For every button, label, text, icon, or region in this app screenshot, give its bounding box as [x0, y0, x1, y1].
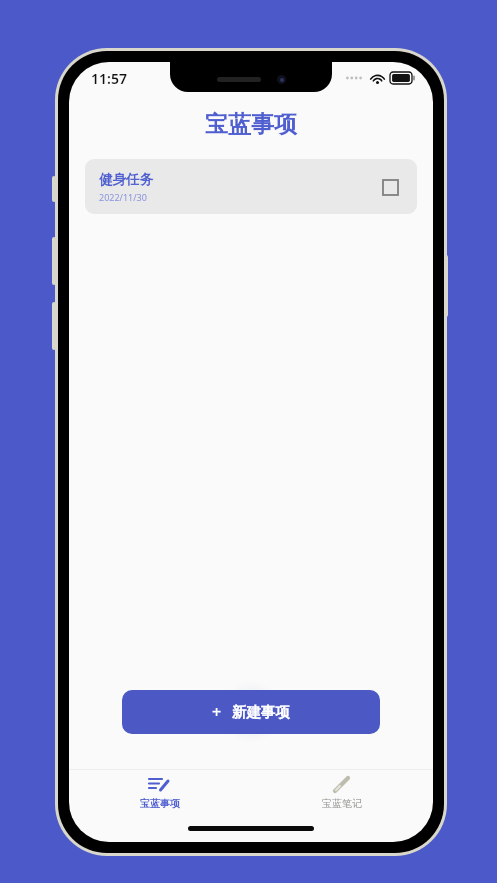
button[interactable]: 宝蓝笔记 — [251, 770, 433, 818]
button[interactable]: 宝蓝事项 — [69, 770, 251, 818]
staticText: 宝蓝事项 — [205, 110, 297, 139]
staticText: 新建事项 — [232, 703, 290, 721]
staticText: 11:57 — [91, 69, 127, 88]
staticText: 宝蓝笔记 — [322, 797, 362, 810]
button[interactable]: + — [122, 690, 380, 734]
button[interactable]: 健身任务 — [85, 159, 417, 214]
button[interactable]: Mark task complete — [377, 174, 403, 200]
staticText: 健身任务 — [99, 171, 153, 188]
staticText: + — [212, 701, 222, 723]
staticText: 宝蓝事项 — [140, 797, 180, 810]
staticText: 2022/11/30 — [99, 191, 147, 203]
